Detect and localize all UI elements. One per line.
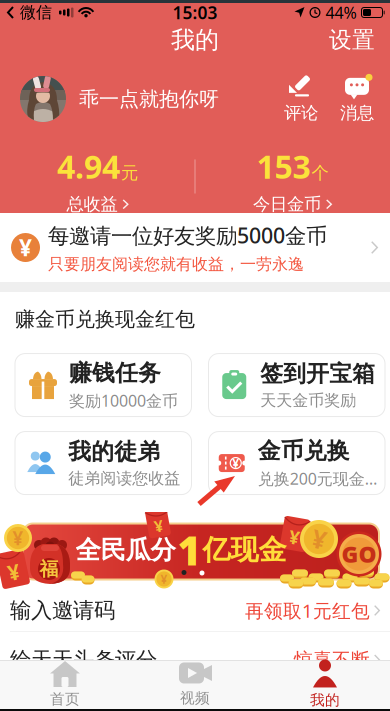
staticText: 奖励10000金币	[69, 390, 178, 411]
button[interactable]: 乖一点就抱你呀	[0, 76, 219, 122]
staticText: GO	[341, 539, 376, 569]
staticText: 惊喜不断	[294, 648, 370, 671]
staticText: 首页	[50, 690, 80, 708]
staticText: 我的	[310, 691, 340, 709]
button[interactable]: 我的徒弟	[15, 432, 191, 495]
staticText: 个	[311, 162, 328, 184]
button[interactable]: 输入邀请码	[0, 590, 390, 631]
staticText: 15:03	[172, 1, 217, 24]
staticText: 天天金币奖励	[260, 391, 356, 410]
staticText: 赚钱任务	[69, 359, 161, 387]
button[interactable]: 153	[195, 138, 390, 215]
staticText: ¥	[160, 571, 167, 587]
staticText: 福	[39, 557, 58, 580]
button[interactable]: 消息	[318, 74, 390, 124]
staticText: 亿现金	[202, 533, 286, 567]
staticText: 设置	[329, 26, 375, 54]
staticText: ¥	[7, 558, 19, 586]
staticText: 全民瓜分	[75, 534, 175, 565]
staticText: ¥	[289, 525, 300, 549]
staticText: 44%	[325, 2, 356, 23]
staticText: ¥	[153, 515, 162, 537]
staticText: 乖一点就抱你呀	[79, 87, 219, 111]
button[interactable]: 给天天头条评分	[0, 632, 390, 688]
staticText: 金币兑换	[258, 437, 350, 465]
staticText: 我的	[171, 25, 219, 55]
staticText: ¥	[232, 455, 239, 471]
staticText: 总收益	[66, 194, 117, 215]
staticText: 消息	[340, 102, 374, 124]
staticText: 我的徒弟	[68, 438, 160, 466]
button[interactable]: ¥	[0, 213, 390, 282]
staticText: 1	[177, 523, 200, 576]
button[interactable]: 签到开宝箱	[208, 354, 385, 417]
button[interactable]: 我的	[260, 660, 390, 709]
staticText: ¥	[19, 232, 32, 262]
staticText: 每邀请一位好友奖励5000金币	[48, 221, 327, 249]
staticText: 再领取1元红包	[245, 598, 370, 623]
button[interactable]: 4.94	[0, 138, 195, 215]
button[interactable]: 评论	[284, 74, 318, 124]
staticText: 153	[256, 145, 310, 188]
staticText: 只要朋友阅读您就有收益，一劳永逸	[48, 254, 304, 274]
button[interactable]: 赚钱任务	[15, 354, 191, 417]
staticText: 输入邀请码	[10, 597, 115, 624]
staticText: 微信	[20, 3, 52, 22]
button[interactable]: 视频	[130, 660, 260, 709]
button[interactable]: 全民瓜分1亿现金	[0, 512, 390, 590]
staticText: 兑换200元现金…	[258, 468, 378, 489]
staticText: 签到开宝箱	[260, 360, 375, 388]
button[interactable]: 设置	[329, 20, 390, 60]
staticText: 元	[121, 162, 138, 184]
button[interactable]: 首页	[0, 660, 130, 709]
staticText: 赚金币兑换现金红包	[15, 307, 195, 332]
staticText: ¥	[312, 522, 326, 556]
staticText: 徒弟阅读您收益	[68, 469, 180, 488]
staticText: 4.94	[57, 145, 120, 188]
staticText: 视频	[180, 689, 210, 707]
staticText: 今日金币	[253, 194, 321, 215]
staticText: 给天天头条评分	[10, 647, 157, 673]
staticText: 评论	[284, 102, 318, 124]
staticText: ¥	[12, 526, 23, 550]
button[interactable]: ¥	[208, 432, 385, 495]
